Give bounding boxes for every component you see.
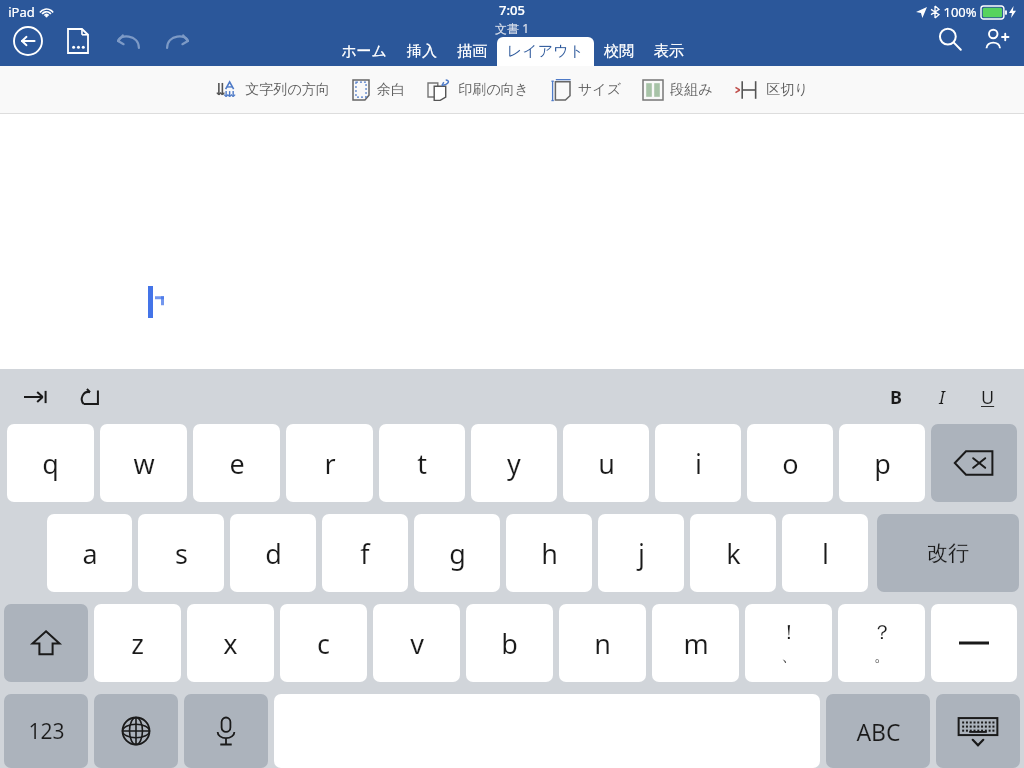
staticText: I xyxy=(939,385,945,410)
button[interactable]: j xyxy=(598,514,684,592)
button[interactable]: k xyxy=(690,514,776,592)
staticText: z xyxy=(131,625,144,662)
staticText: m xyxy=(683,625,709,662)
button[interactable]: e xyxy=(193,424,280,502)
staticText: 123 xyxy=(28,717,65,746)
button[interactable]: Back xyxy=(6,19,50,63)
button[interactable]: 校閲 xyxy=(594,37,644,66)
staticText: l xyxy=(822,535,829,572)
button[interactable] xyxy=(931,604,1017,682)
staticText: w xyxy=(133,445,155,482)
staticText: f xyxy=(360,535,370,572)
button[interactable]: 描画 xyxy=(447,37,497,66)
button[interactable]: File xyxy=(56,19,100,63)
button[interactable]: ？ xyxy=(838,604,925,682)
staticText: y xyxy=(507,445,521,482)
staticText: サイズ xyxy=(578,81,621,99)
button[interactable]: d xyxy=(230,514,316,592)
staticText: ！ xyxy=(779,620,799,645)
button[interactable]: レイアウト xyxy=(497,37,594,66)
button[interactable]: 印刷の向き xyxy=(416,75,540,105)
button[interactable]: s xyxy=(138,514,224,592)
staticText: 改行 xyxy=(927,540,969,566)
button[interactable]: Shift xyxy=(4,604,88,682)
button[interactable]: y xyxy=(471,424,557,502)
button[interactable]: l xyxy=(782,514,868,592)
button[interactable]: c xyxy=(280,604,367,682)
staticText: 文字列の方向 xyxy=(245,81,330,99)
button[interactable]: h xyxy=(506,514,592,592)
button[interactable]: Search xyxy=(930,19,970,59)
staticText: s xyxy=(175,535,188,572)
button[interactable]: x xyxy=(187,604,274,682)
button[interactable]: 改行 xyxy=(877,514,1019,592)
staticText: t xyxy=(417,445,427,482)
button[interactable]: Hide keyboard xyxy=(936,694,1020,768)
staticText: ホーム xyxy=(341,42,387,61)
button[interactable]: I xyxy=(924,379,960,415)
button[interactable]: q xyxy=(7,424,94,502)
button[interactable]: v xyxy=(373,604,460,682)
staticText: 区切り xyxy=(766,81,809,99)
staticText: j xyxy=(638,535,645,572)
button[interactable]: Dictation xyxy=(184,694,268,768)
button[interactable]: B xyxy=(878,379,914,415)
button[interactable]: n xyxy=(559,604,646,682)
staticText: d xyxy=(265,535,282,572)
staticText: B xyxy=(890,385,902,410)
button[interactable]: 段組み xyxy=(632,76,724,104)
staticText: ？ xyxy=(872,620,892,645)
button[interactable]: ホーム xyxy=(331,37,397,66)
staticText: 、 xyxy=(781,645,798,666)
staticText: i xyxy=(695,445,702,482)
staticText: ABC xyxy=(856,716,901,747)
button[interactable]: 123 xyxy=(4,694,88,768)
button[interactable]: Share xyxy=(976,19,1016,59)
button[interactable]: 挿入 xyxy=(397,37,447,66)
button[interactable]: g xyxy=(414,514,500,592)
staticText: 校閲 xyxy=(604,42,634,61)
staticText: 表示 xyxy=(654,42,684,61)
button[interactable]: 表示 xyxy=(644,37,694,66)
staticText: n xyxy=(594,625,611,662)
staticText: a xyxy=(82,535,98,572)
button[interactable]: U xyxy=(970,379,1006,415)
button[interactable]: Tab xyxy=(16,377,56,417)
button[interactable]: 余白 xyxy=(341,75,416,105)
staticText: u xyxy=(598,445,615,482)
button[interactable]: サイズ xyxy=(540,75,632,105)
button[interactable]: z xyxy=(94,604,181,682)
button[interactable]: p xyxy=(839,424,925,502)
button[interactable]: m xyxy=(652,604,739,682)
button[interactable]: i xyxy=(655,424,741,502)
staticText: レイアウト xyxy=(507,42,584,61)
staticText: g xyxy=(449,535,466,572)
button[interactable]: r xyxy=(286,424,373,502)
button[interactable]: Hide formats xyxy=(70,377,110,417)
staticText: U xyxy=(981,385,995,410)
button[interactable]: 文字列の方向 xyxy=(205,75,341,105)
button[interactable]: u xyxy=(563,424,649,502)
staticText: x xyxy=(223,625,238,662)
button[interactable]: f xyxy=(322,514,408,592)
button[interactable]: ！ xyxy=(745,604,832,682)
button[interactable]: Change language xyxy=(94,694,178,768)
button[interactable]: o xyxy=(747,424,833,502)
button[interactable]: w xyxy=(100,424,187,502)
staticText: 段組み xyxy=(670,81,713,99)
staticText: c xyxy=(317,625,330,662)
button[interactable]: a xyxy=(47,514,132,592)
staticText: 7:05 xyxy=(499,1,525,19)
staticText: h xyxy=(541,535,558,572)
button[interactable]: b xyxy=(466,604,553,682)
button[interactable]: Backspace xyxy=(931,424,1017,502)
staticText: 100% xyxy=(943,3,977,21)
button[interactable]: Undo xyxy=(106,19,150,63)
button[interactable]: t xyxy=(379,424,465,502)
button[interactable]: 区切り xyxy=(724,75,820,105)
staticText: r xyxy=(324,445,336,482)
staticText: iPad xyxy=(8,3,35,21)
button[interactable]: ABC xyxy=(826,694,930,768)
button[interactable]: Redo xyxy=(156,19,200,63)
